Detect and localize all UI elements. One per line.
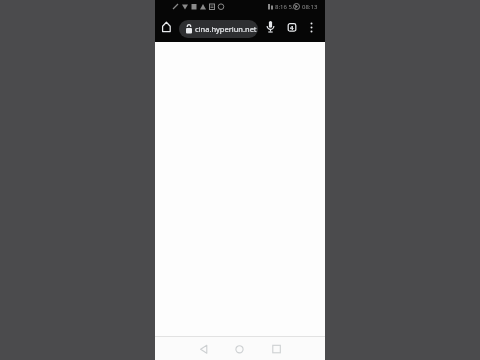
button[interactable] (303, 17, 320, 38)
staticText: 8:16 5.1 (275, 3, 297, 11)
staticText: 08:13 (302, 3, 318, 11)
button[interactable]: 4 (283, 17, 301, 38)
button[interactable] (227, 337, 252, 360)
button[interactable] (264, 337, 289, 360)
staticText: 4 (290, 24, 294, 32)
button[interactable] (261, 17, 280, 38)
button[interactable]: cina.hyperiun.net (179, 20, 258, 38)
button[interactable] (157, 17, 176, 38)
button[interactable] (191, 337, 216, 360)
staticText: cina.hyperiun.net (195, 24, 257, 34)
